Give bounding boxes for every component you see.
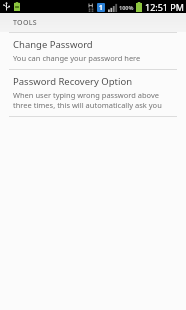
staticText: You can change your password here <box>13 53 141 63</box>
staticText: TOOLS <box>13 18 37 28</box>
staticText: When user typing wrong password above th… <box>13 90 176 110</box>
staticText: 100% <box>119 4 134 11</box>
staticText: 1 <box>99 3 103 12</box>
staticText: Password Recovery Option <box>13 75 133 88</box>
staticText: 12:51 PM <box>145 1 184 13</box>
button[interactable]: Password Recovery Option <box>0 70 186 116</box>
button[interactable]: Change Password <box>0 33 186 69</box>
staticText: Change Password <box>13 38 93 51</box>
